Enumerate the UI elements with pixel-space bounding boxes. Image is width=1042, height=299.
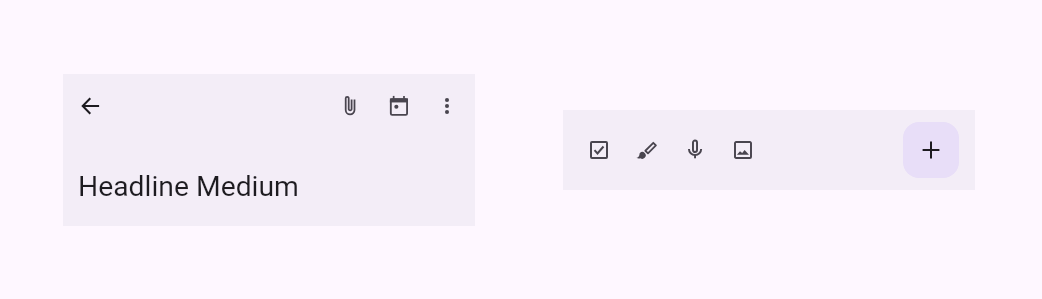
staticText: Headline Medium	[78, 170, 299, 203]
button[interactable]: Microphone	[671, 126, 719, 174]
button[interactable]: Attach file	[326, 82, 374, 130]
button[interactable]: More options	[423, 82, 471, 130]
button[interactable]: Calendar	[375, 82, 423, 130]
button[interactable]: Brush	[623, 126, 671, 174]
button[interactable]: Back	[67, 82, 115, 130]
button[interactable]: Image	[719, 126, 767, 174]
button[interactable]: Add	[903, 122, 959, 178]
button[interactable]: Check box	[575, 126, 623, 174]
